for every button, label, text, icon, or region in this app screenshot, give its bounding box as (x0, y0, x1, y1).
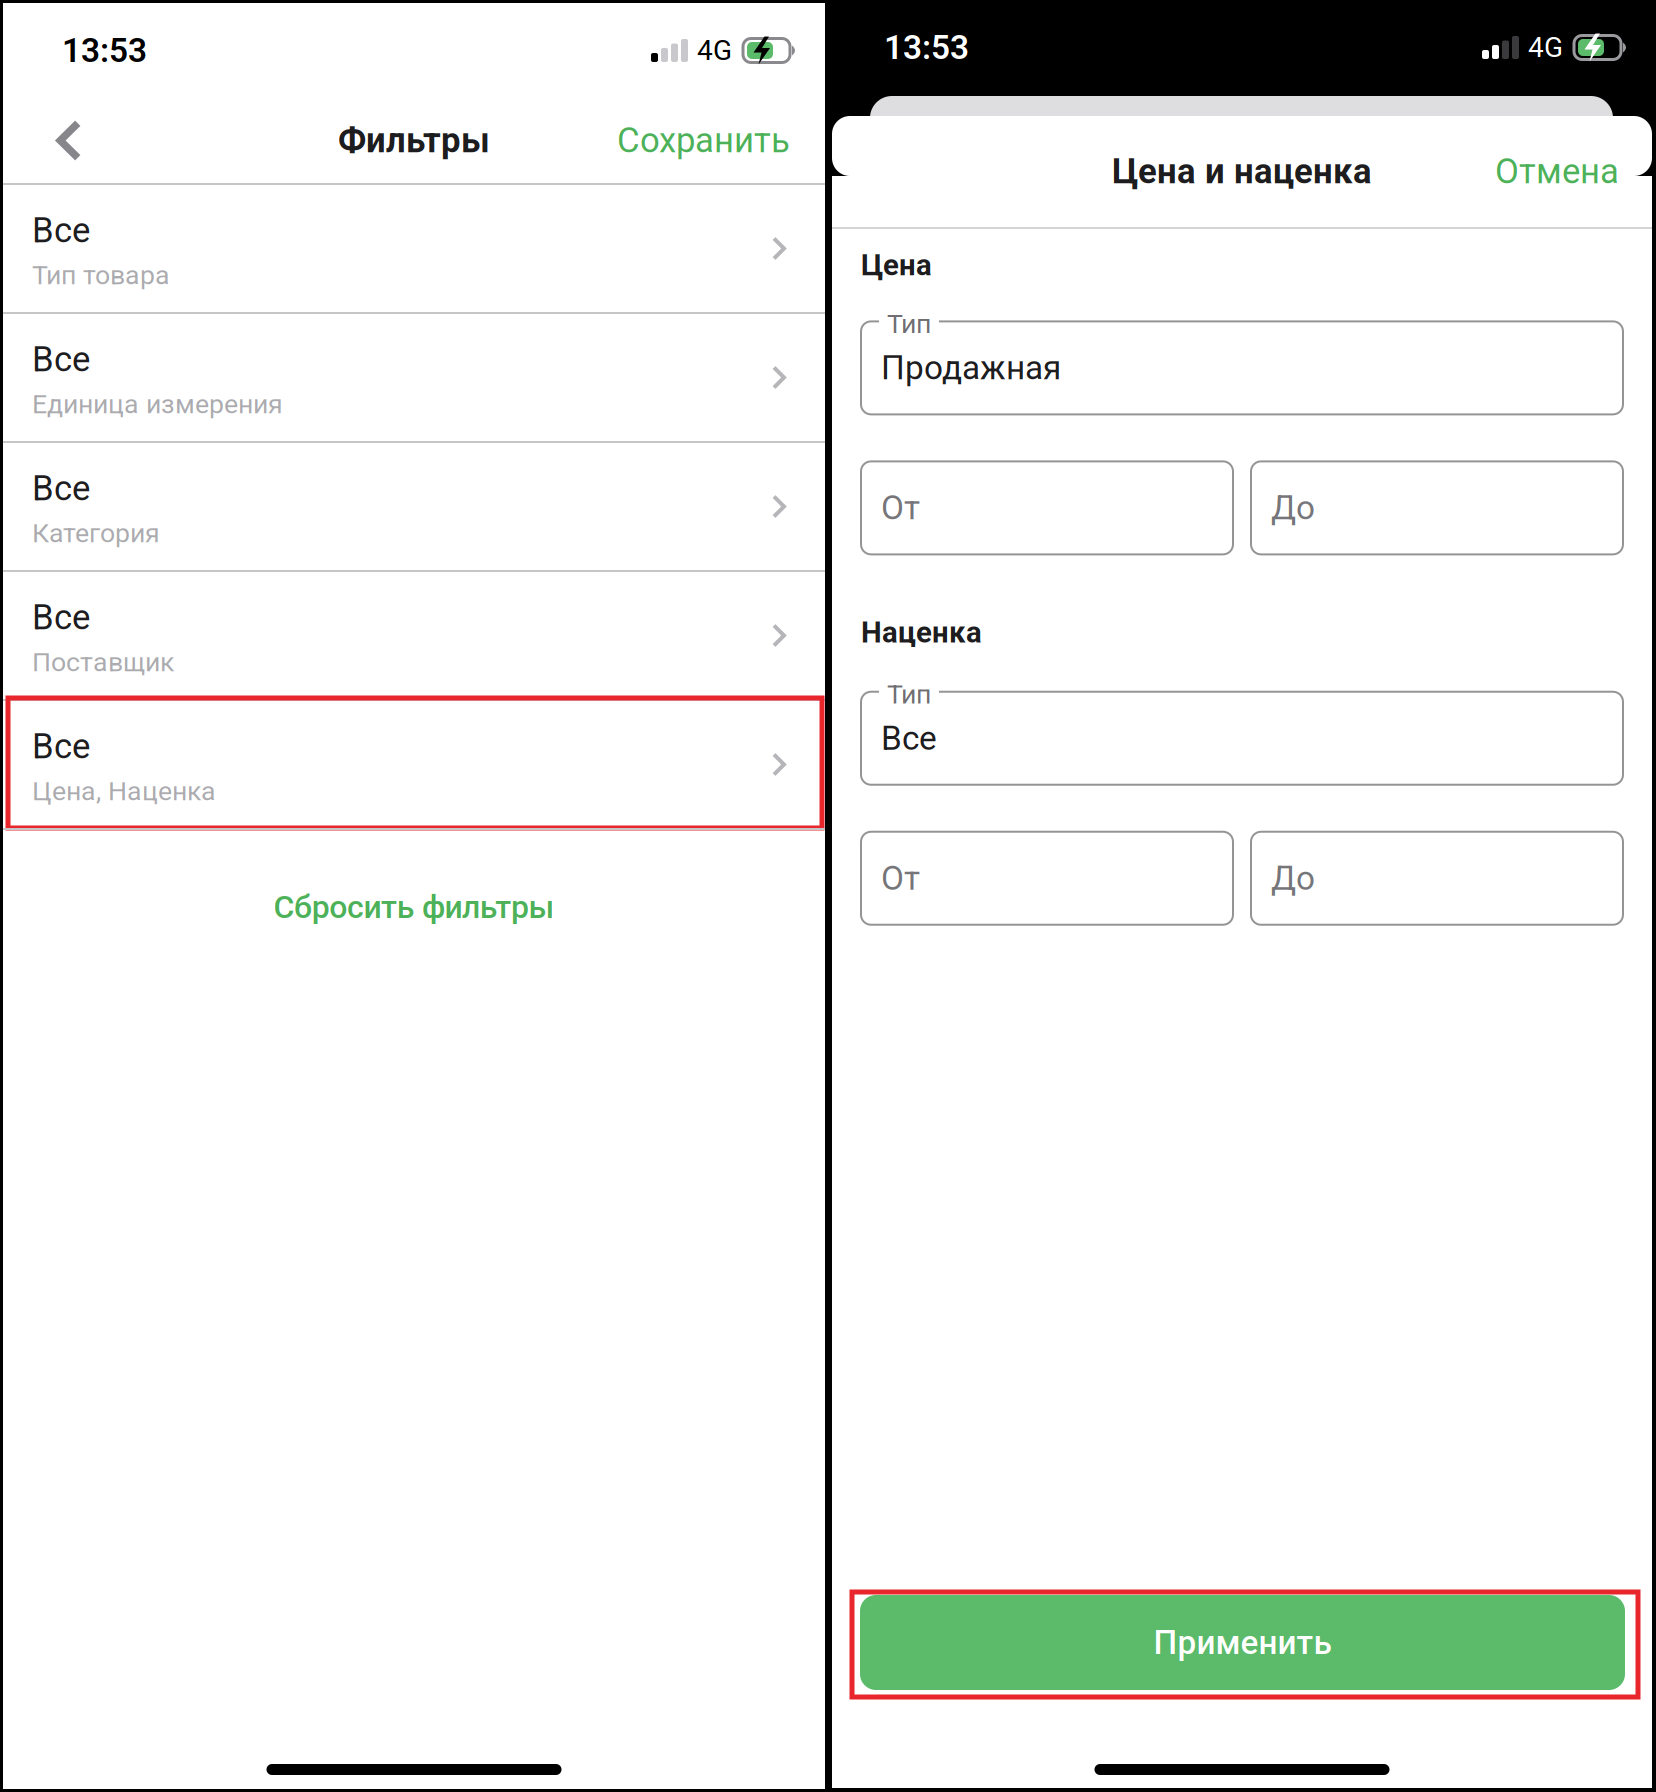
staticText: Все (32, 210, 90, 251)
staticText: Категория (32, 518, 160, 549)
button[interactable]: От (861, 832, 1233, 925)
staticText: Применить (1153, 1623, 1331, 1662)
staticText: Продажная (881, 348, 1061, 387)
staticText: Тип (887, 679, 931, 710)
staticText: От (881, 859, 920, 898)
staticText: Единица измерения (32, 389, 283, 420)
button[interactable]: До (1251, 832, 1623, 925)
staticText: Цена и наценка (1112, 151, 1372, 192)
staticText: До (1271, 488, 1315, 527)
staticText: Сбросить фильтры (273, 888, 554, 926)
staticText: Тип (887, 308, 931, 340)
staticText: 4G (697, 34, 732, 67)
staticText: Цена (861, 248, 932, 282)
button[interactable]: До (1251, 461, 1623, 554)
button[interactable]: Все (861, 692, 1623, 785)
staticText: Все (32, 726, 90, 767)
staticText: Цена, Наценка (32, 776, 216, 807)
staticText: 13:53 (62, 31, 147, 70)
staticText: Все (881, 719, 937, 758)
button[interactable]: Сбросить фильтры (3, 830, 825, 984)
staticText: Все (32, 339, 90, 380)
staticText: Все (32, 597, 90, 638)
button[interactable]: Применить (860, 1595, 1625, 1690)
button[interactable]: От (861, 461, 1233, 554)
staticText: Сохранить (617, 120, 790, 161)
staticText: Поставщик (32, 647, 174, 678)
staticText: До (1271, 859, 1315, 898)
staticText: Все (32, 468, 90, 509)
button[interactable]: Все (3, 701, 825, 828)
staticText: Тип товара (32, 260, 170, 291)
staticText: Отмена (1495, 151, 1619, 192)
button[interactable]: Все (3, 314, 825, 441)
staticText: Фильтры (338, 120, 490, 161)
button[interactable]: Назад (3, 98, 135, 183)
staticText: 4G (1528, 31, 1563, 64)
staticText: Наценка (861, 615, 982, 650)
button[interactable]: Отмена (1471, 116, 1652, 227)
button[interactable]: Все (3, 443, 825, 570)
staticText: 13:53 (884, 28, 969, 67)
button[interactable]: Все (3, 572, 825, 699)
button[interactable]: Все (3, 185, 825, 312)
staticText: От (881, 488, 920, 527)
button[interactable]: Продажная (861, 321, 1623, 414)
button[interactable]: Сохранить (597, 98, 825, 183)
